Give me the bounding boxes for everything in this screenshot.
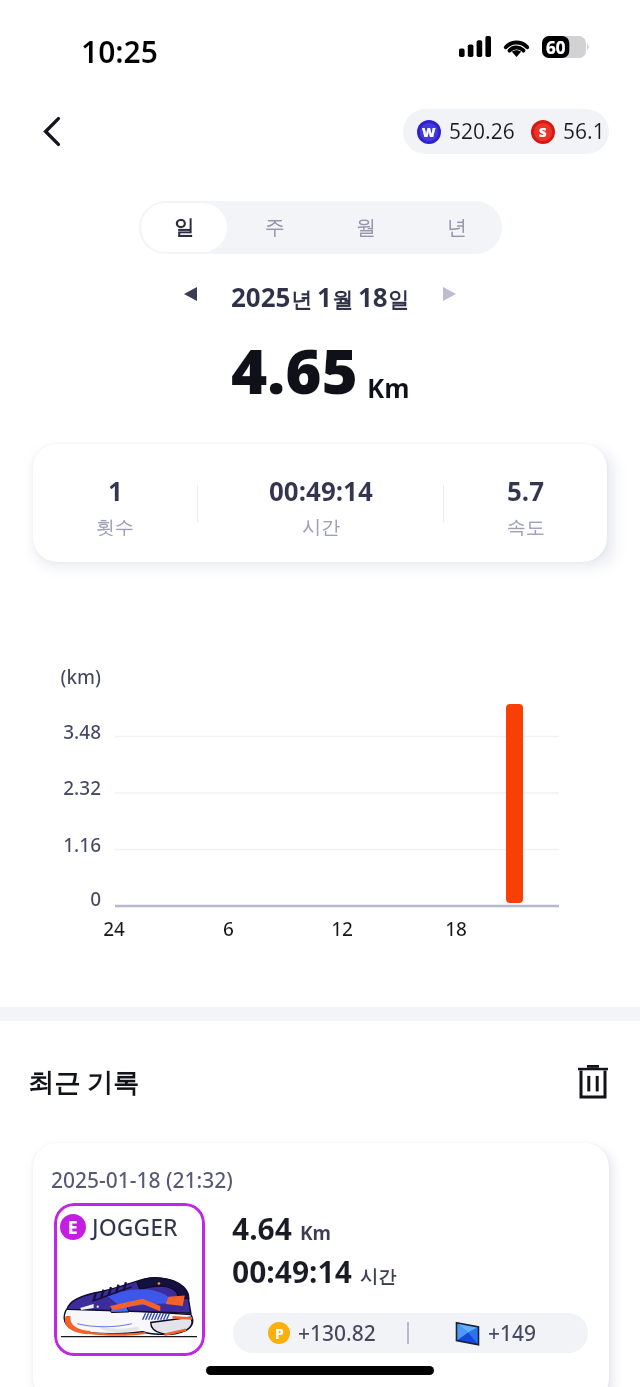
- staticText: W: [422, 123, 436, 141]
- button[interactable]: Next day: [427, 272, 471, 316]
- staticText: JOGGER: [92, 1211, 178, 1242]
- staticText: 월: [356, 215, 376, 240]
- staticText: 시간: [360, 1266, 396, 1289]
- staticText: E: [68, 1216, 78, 1239]
- staticText: 5.7: [507, 473, 545, 508]
- staticText: +130.82: [298, 1319, 376, 1348]
- staticText: 최근 기록: [28, 1064, 139, 1100]
- staticText: 일: [388, 287, 409, 313]
- staticText: 18: [358, 279, 388, 314]
- staticText: 56.1: [563, 117, 605, 146]
- staticText: Km: [367, 370, 410, 405]
- button[interactable]: 년: [413, 203, 500, 252]
- staticText: (km): [60, 664, 101, 690]
- staticText: 1.16: [63, 832, 101, 858]
- staticText: 주: [265, 215, 285, 240]
- staticText: 4.64: [232, 1208, 292, 1249]
- staticText: 속도: [507, 516, 545, 540]
- staticText: 520.26: [449, 117, 515, 146]
- staticText: 60: [546, 36, 566, 58]
- button[interactable]: Previous day: [168, 272, 212, 316]
- button[interactable]: Back: [28, 107, 76, 155]
- staticText: 3.48: [63, 719, 101, 745]
- staticText: 2.32: [63, 775, 101, 801]
- button[interactable]: Delete records: [570, 1058, 616, 1104]
- staticText: 년: [447, 215, 467, 240]
- staticText: 24: [103, 916, 125, 942]
- staticText: 1: [108, 473, 123, 508]
- staticText: 4.65: [231, 328, 358, 412]
- button[interactable]: P: [233, 1313, 588, 1353]
- staticText: S: [539, 123, 547, 141]
- staticText: +149: [488, 1319, 537, 1348]
- button[interactable]: 2025-01-18 (21:32): [33, 1143, 609, 1387]
- staticText: 2025-01-18 (21:32): [51, 1166, 233, 1195]
- button[interactable]: 월: [322, 203, 409, 252]
- staticText: 6: [223, 916, 234, 942]
- staticText: 시간: [302, 516, 340, 540]
- staticText: 횟수: [96, 516, 134, 540]
- staticText: 12: [331, 916, 353, 942]
- staticText: 일: [174, 215, 194, 240]
- staticText: P: [275, 1324, 284, 1343]
- staticText: 18: [445, 916, 467, 942]
- staticText: 월: [332, 287, 353, 313]
- staticText: 10:25: [81, 31, 158, 72]
- staticText: 년: [291, 287, 312, 313]
- button[interactable]: 일: [141, 203, 227, 252]
- staticText: 0: [90, 886, 101, 912]
- staticText: 1: [317, 279, 332, 314]
- button[interactable]: 주: [231, 203, 318, 252]
- staticText: Km: [300, 1220, 332, 1246]
- button[interactable]: W: [403, 109, 609, 154]
- staticText: 00:49:14: [232, 1251, 352, 1292]
- staticText: 2025: [231, 279, 291, 314]
- staticText: 00:49:14: [269, 473, 373, 508]
